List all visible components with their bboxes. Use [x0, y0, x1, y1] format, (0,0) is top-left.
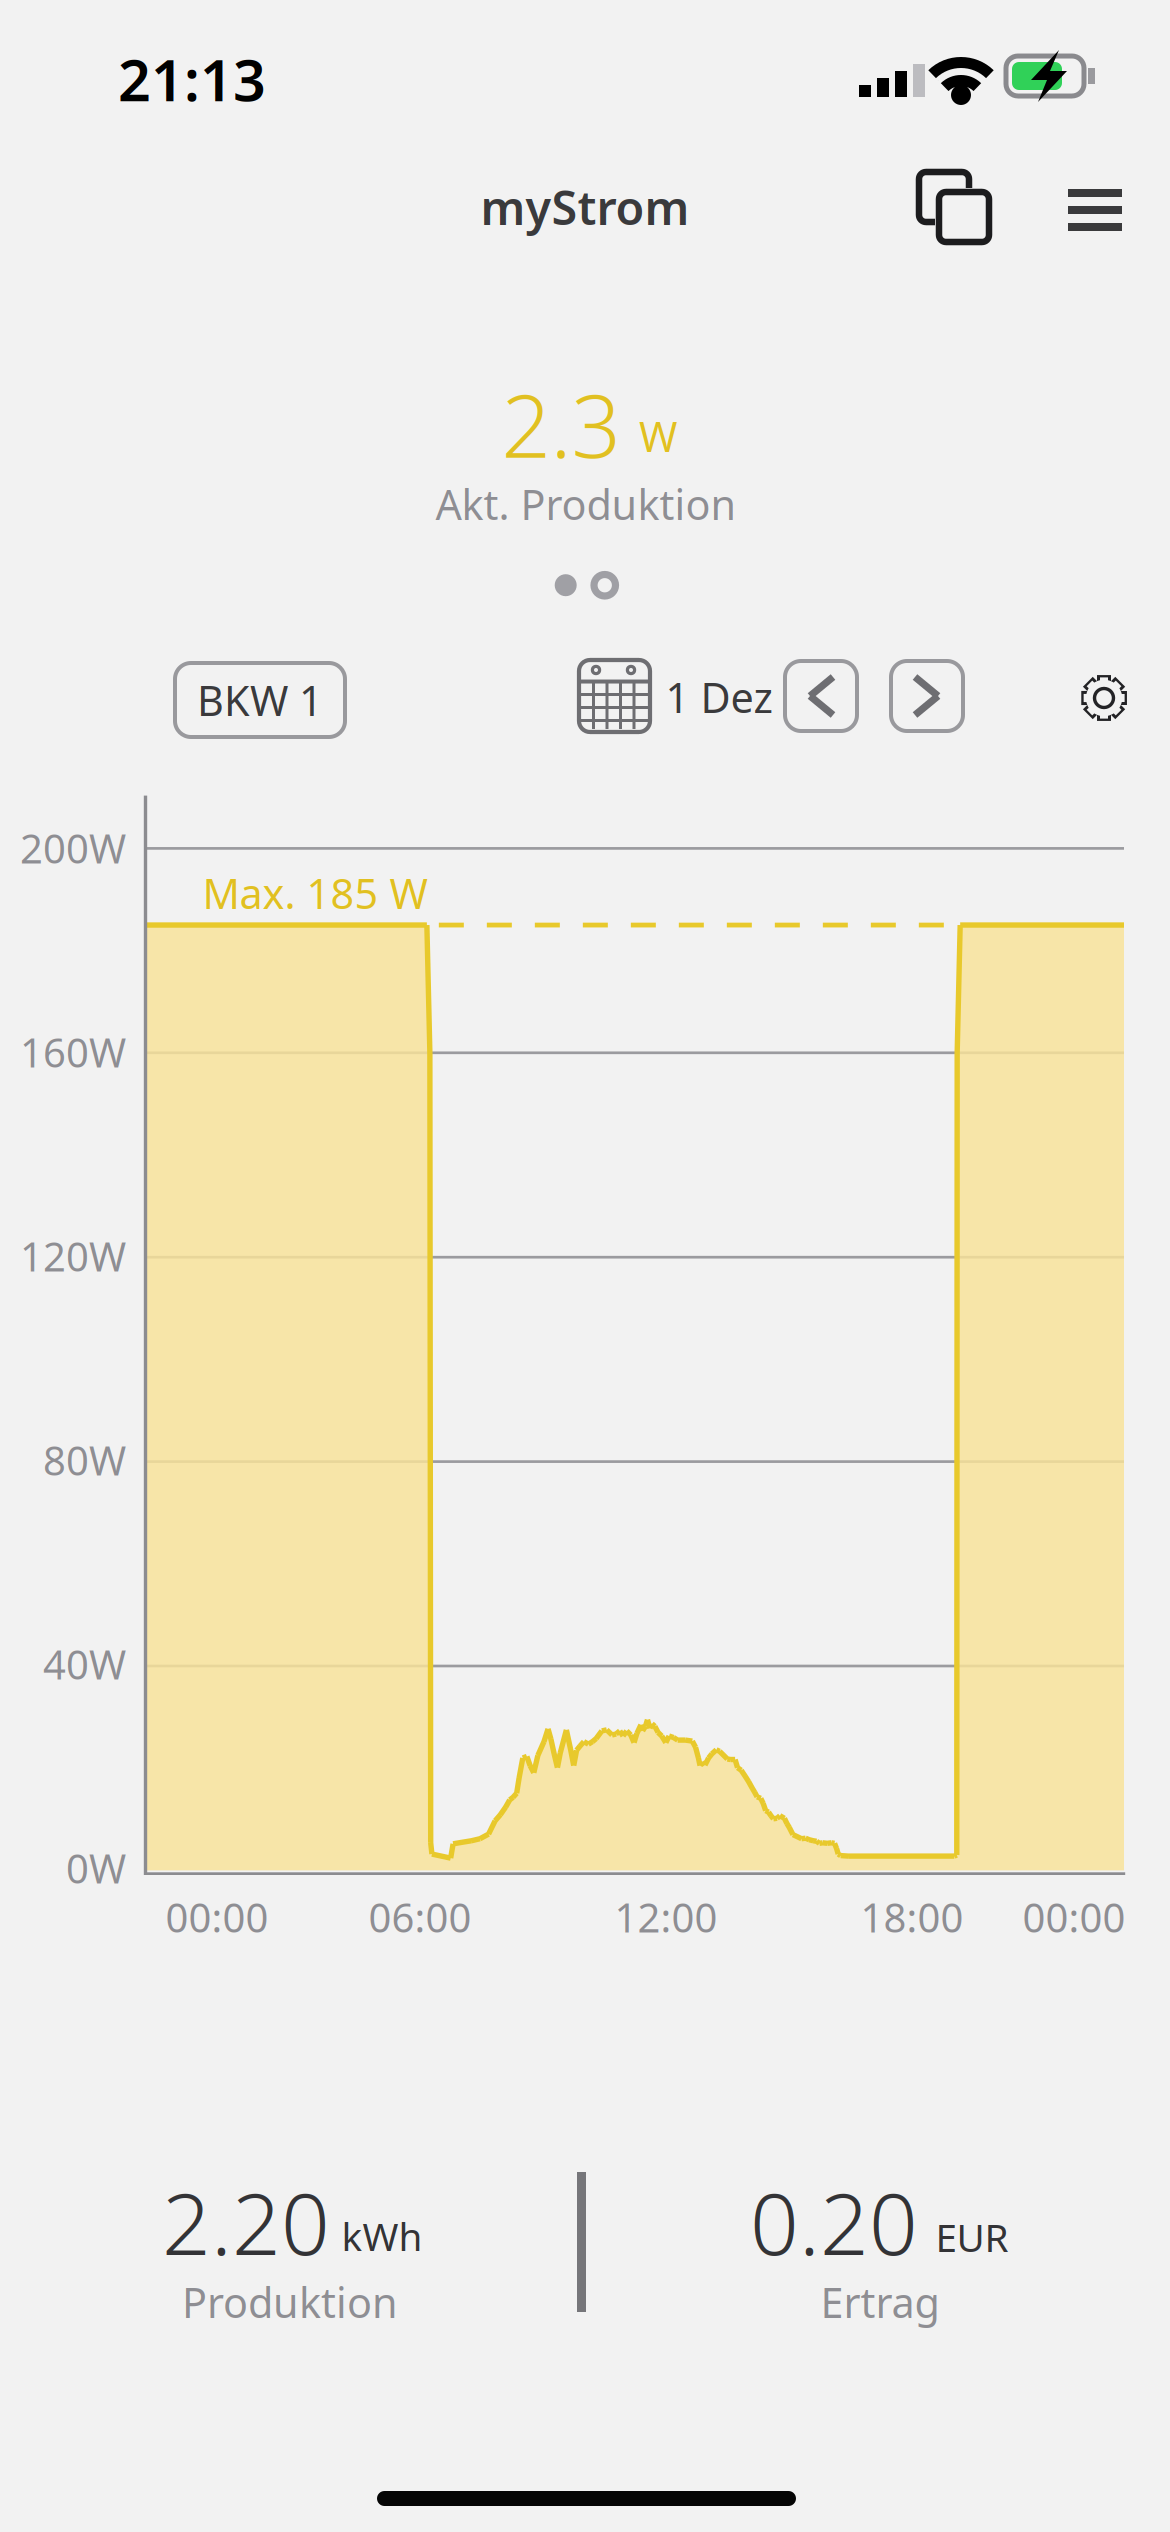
staticText: 40W [43, 1637, 126, 1690]
staticText: 2.20 [162, 2165, 330, 2279]
staticText: 18:00 [860, 1890, 963, 1943]
staticText: 160W [20, 1025, 126, 1078]
button[interactable]: Previous day [0, 0, 1170, 2532]
button[interactable]: Devices [0, 0, 1170, 2532]
staticText: 0.20 [750, 2165, 918, 2279]
button[interactable]: BKW 1 [0, 0, 1170, 2532]
staticText: myStrom [480, 176, 689, 238]
staticText: 06:00 [368, 1890, 471, 1943]
staticText: 12:00 [614, 1890, 717, 1943]
staticText: Akt. Produktion [435, 477, 736, 531]
staticText: 21:13 [118, 41, 266, 117]
staticText: 80W [43, 1433, 126, 1486]
staticText: 2.3 [501, 366, 620, 482]
staticText: EUR [935, 2211, 1008, 2263]
staticText: 00:00 [165, 1890, 268, 1943]
staticText: Max. 185 W [202, 866, 427, 920]
staticText: 0W [66, 1841, 126, 1894]
staticText: Produktion [182, 2275, 398, 2329]
staticText: 200W [20, 821, 126, 874]
button[interactable]: Next day [0, 0, 1170, 2532]
button[interactable]: Settings [0, 0, 1170, 2532]
staticText: Ertrag [820, 2275, 939, 2329]
staticText: 120W [20, 1229, 126, 1282]
button[interactable]: Menu [0, 0, 1170, 2532]
staticText: 1 Dez [665, 670, 772, 724]
staticText: W [639, 409, 677, 463]
staticText: kWh [341, 2210, 422, 2262]
staticText: BKW 1 [197, 673, 323, 727]
staticText: 00:00 [1022, 1890, 1125, 1943]
